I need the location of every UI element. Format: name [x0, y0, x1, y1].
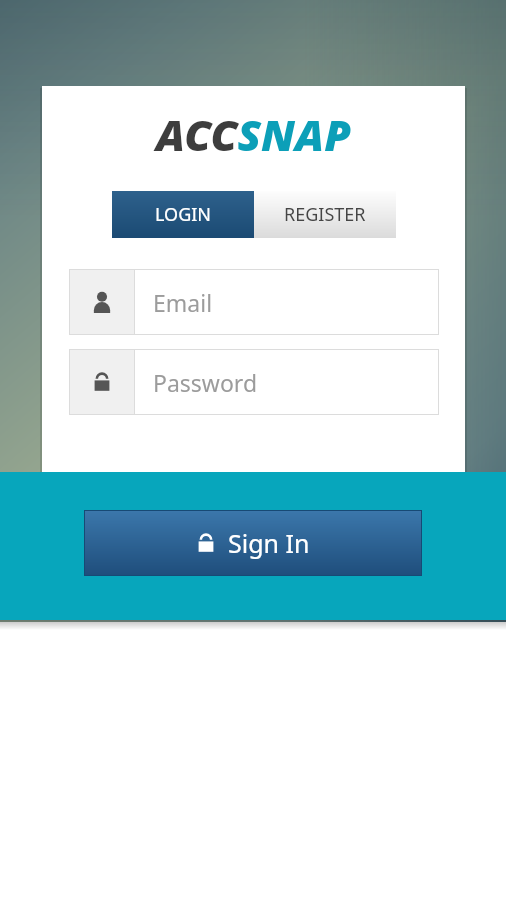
- staticText: ACCSNAP: [156, 105, 351, 164]
- staticText: LOGIN: [155, 202, 212, 227]
- other: User: [91, 291, 113, 313]
- staticText: Sign In: [228, 526, 310, 560]
- button[interactable]: Lock: [85, 511, 421, 575]
- other: Lock: [92, 372, 112, 392]
- button[interactable]: LOGIN: [112, 191, 254, 238]
- staticText: REGISTER: [284, 202, 366, 227]
- staticText: Email: [153, 287, 213, 318]
- staticText: Password: [153, 367, 258, 398]
- button[interactable]: Lock: [69, 349, 439, 415]
- other: Lock: [196, 533, 216, 553]
- button[interactable]: REGISTER: [254, 191, 396, 238]
- button[interactable]: User: [69, 269, 439, 335]
